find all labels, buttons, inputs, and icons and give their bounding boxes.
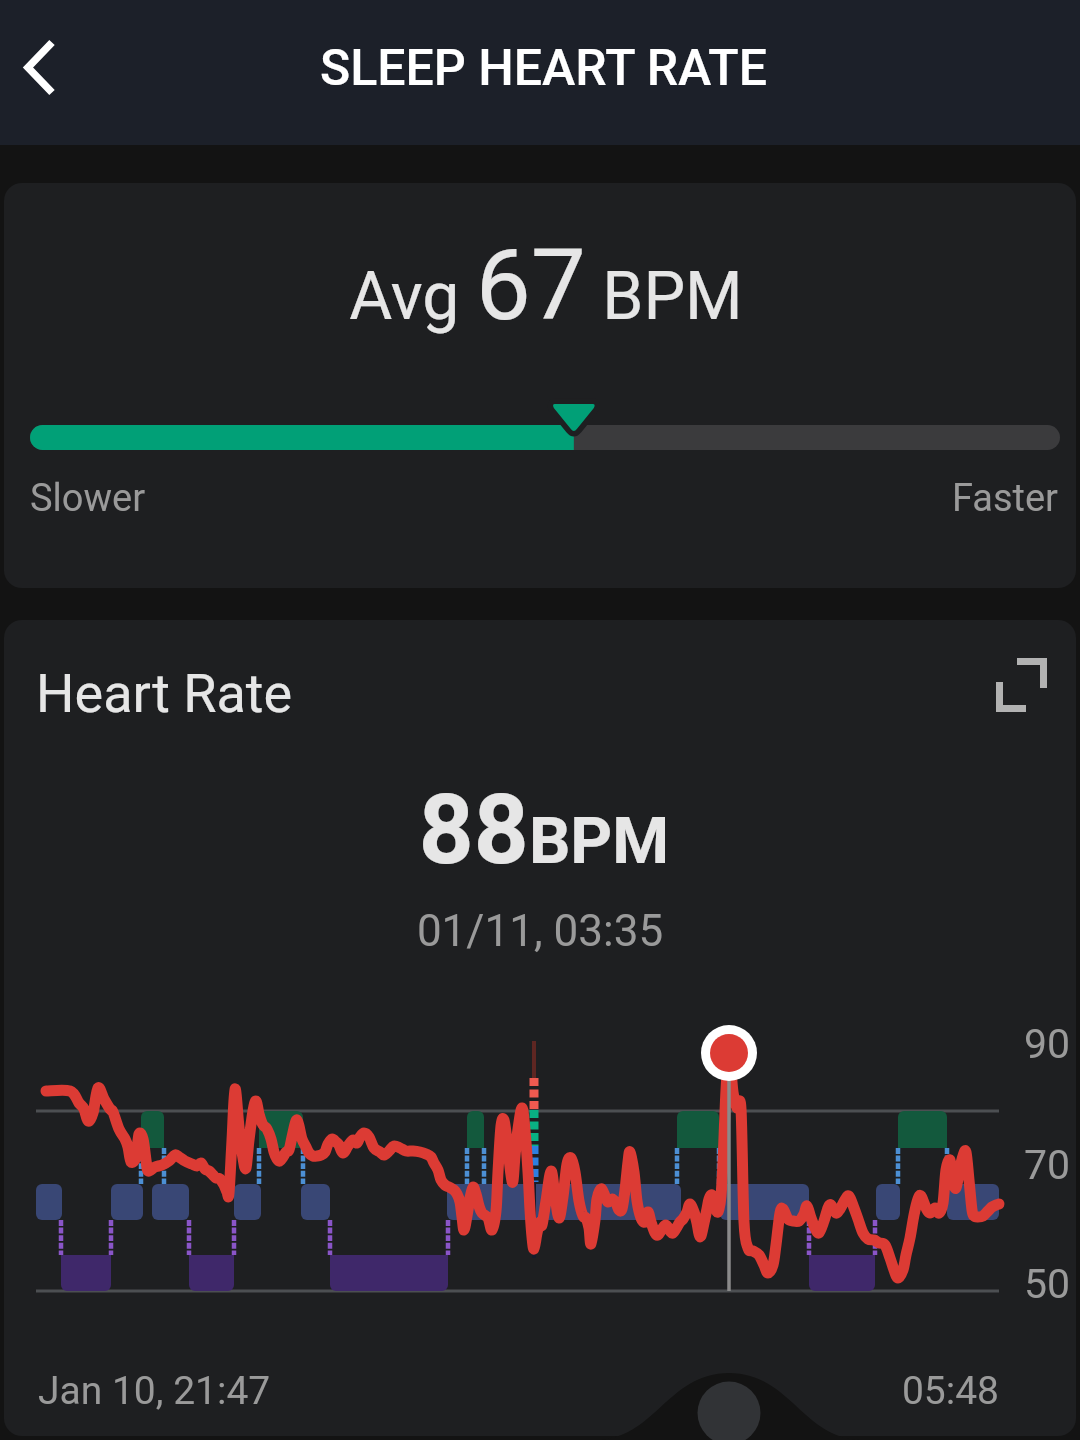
button[interactable]: Expand chart [970,634,1072,736]
staticText: 88BPM [4,774,1080,887]
staticText: Avg 67 BPM [6,228,1080,343]
button[interactable]: Back [0,25,96,121]
staticText: Heart Rate [36,662,293,725]
staticText: 01/11, 03:35 [0,905,1080,957]
staticText: 90 [1024,1020,1071,1068]
staticText: 05:48 [868,1368,999,1414]
staticText: 70 [1024,1141,1071,1189]
staticText: 50 [1024,1260,1071,1308]
staticText: Jan 10, 21:47 [38,1368,271,1414]
staticText: Faster [928,476,1058,521]
staticText: SLEEP HEART RATE [320,39,767,98]
staticText: Slower [30,476,146,521]
